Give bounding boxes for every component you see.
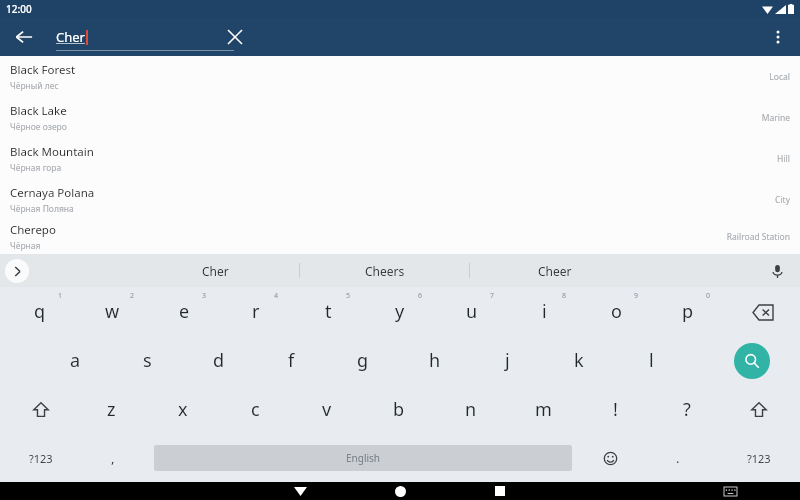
button[interactable]: q [7,287,73,336]
staticText: Marine [761,112,790,124]
staticText: Black Mountain [10,144,94,160]
staticText: Hill [777,153,790,165]
button[interactable]: i [511,287,577,336]
staticText: g [357,348,369,373]
staticText: w [105,299,120,324]
staticText: Railroad Station [726,231,790,243]
staticText: Black Lake [10,103,67,119]
button[interactable]: ? [654,385,720,434]
button[interactable]: More options [762,21,794,53]
button[interactable]: Clear search [220,22,250,52]
button[interactable]: English [154,445,572,471]
staticText: Cheer [538,263,572,279]
button[interactable]: Emoji [590,438,630,478]
button[interactable]: o [583,287,649,336]
button[interactable]: g [330,336,396,385]
button[interactable]: u [439,287,505,336]
button[interactable]: Cheers [300,254,470,287]
staticText: 9 [634,291,639,301]
staticText: u [466,299,478,324]
button[interactable]: Black Lake [0,97,800,138]
staticText: x [178,397,188,422]
button[interactable]: Backspace [740,289,786,335]
button[interactable]: p [655,287,721,336]
staticText: ?123 [747,451,771,466]
staticText: p [682,299,694,324]
staticText: 8 [562,291,567,301]
staticText: Чёрная гора [10,162,62,174]
staticText: Чёрная Поляна [10,203,74,215]
staticText: j [505,348,510,373]
button[interactable]: Back [280,482,320,500]
staticText: e [179,299,190,324]
button[interactable]: ! [582,385,648,434]
button[interactable]: f [258,336,324,385]
staticText: Чёрный лес [10,80,59,92]
button[interactable]: Search [734,343,770,379]
button[interactable]: , [86,434,140,482]
button[interactable]: ?123 [732,434,786,482]
staticText: z [107,397,116,422]
staticText: r [252,299,260,324]
button[interactable]: d [186,336,252,385]
staticText: ? [683,397,691,422]
staticText: i [542,299,547,324]
button[interactable]: Voice input [764,258,790,284]
staticText: a [70,348,81,373]
button[interactable]: Cher [56,18,246,56]
staticText: , [111,449,115,467]
button[interactable]: j [474,336,540,385]
button[interactable]: b [366,385,432,434]
button[interactable]: Back [8,21,40,53]
staticText: Cheers [365,263,405,279]
staticText: y [395,299,405,324]
staticText: d [213,348,225,373]
button[interactable]: l [618,336,684,385]
button[interactable]: v [294,385,360,434]
staticText: 3 [202,291,207,301]
button[interactable]: Recent apps [480,482,520,500]
button[interactable]: Switch keyboard [715,482,745,500]
button[interactable]: Cher [130,254,300,287]
button[interactable]: y [367,287,433,336]
button[interactable]: Shift [732,385,786,434]
button[interactable]: Black Mountain [0,138,800,179]
button[interactable]: Cheer [470,254,640,287]
staticText: 0 [706,291,711,301]
button[interactable]: m [510,385,576,434]
button[interactable]: ?123 [14,434,68,482]
staticText: Чёрная [10,240,41,252]
button[interactable]: s [114,336,180,385]
staticText: n [465,397,477,422]
button[interactable]: Cherepo [0,220,800,254]
button[interactable]: a [42,336,108,385]
button[interactable]: c [222,385,288,434]
button[interactable]: r [223,287,289,336]
staticText: c [251,397,260,422]
staticText: 6 [418,291,423,301]
button[interactable]: . [651,434,705,482]
staticText: 7 [490,291,495,301]
button[interactable]: z [78,385,144,434]
button[interactable]: h [402,336,468,385]
button[interactable]: k [546,336,612,385]
staticText: Cernaya Polana [10,185,95,201]
button[interactable]: w [79,287,145,336]
button[interactable]: Black Forest [0,56,800,97]
staticText: ! [613,397,618,422]
staticText: Black Forest [10,62,76,78]
staticText: l [649,348,654,373]
button[interactable]: x [150,385,216,434]
staticText: Local [769,71,790,83]
button[interactable]: n [438,385,504,434]
button[interactable]: Expand suggestions [5,259,29,283]
staticText: 12:00 [6,2,32,16]
staticText: English [346,451,381,465]
button[interactable]: Shift [14,385,68,434]
button[interactable]: Home [380,482,420,500]
button[interactable]: t [295,287,361,336]
button[interactable]: Cernaya Polana [0,179,800,220]
staticText: 5 [346,291,351,301]
staticText: Cherepo [10,222,56,238]
button[interactable]: e [151,287,217,336]
